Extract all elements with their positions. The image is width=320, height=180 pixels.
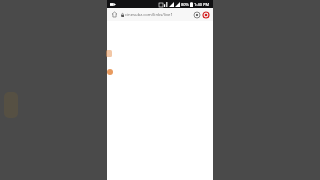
staticText: cinesubz.com/links/live1 (125, 12, 173, 18)
button[interactable]: Tabs (193, 11, 201, 19)
button[interactable]: Stop recording (202, 11, 210, 19)
button[interactable]: Home (110, 10, 119, 19)
button[interactable]: cinesubz.com/links/live1 (121, 10, 192, 20)
staticText: 1:40 PM (194, 2, 210, 7)
staticText: 80% (181, 2, 189, 7)
